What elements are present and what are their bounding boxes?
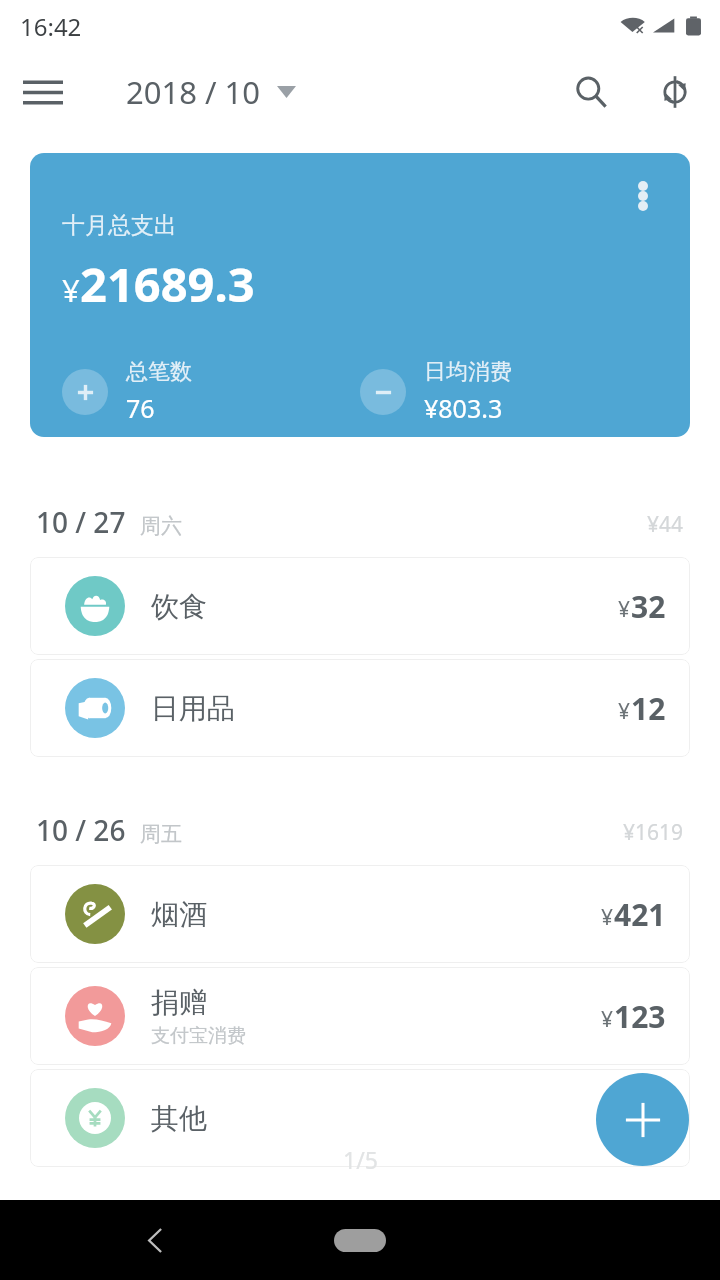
button[interactable]: 捐赠 bbox=[30, 967, 690, 1065]
button[interactable]: 2018 / 10 bbox=[126, 71, 296, 113]
staticText: 76 bbox=[126, 391, 155, 425]
staticText: ¥ bbox=[618, 595, 631, 624]
staticText: ¥1619 bbox=[623, 818, 684, 847]
button[interactable]: More options bbox=[30, 153, 690, 437]
staticText: ¥ bbox=[62, 269, 80, 311]
staticText: 123 bbox=[614, 996, 666, 1037]
staticText: 支付宝消费 bbox=[151, 1024, 246, 1048]
staticText: 2018 / 10 bbox=[126, 71, 261, 113]
button[interactable]: Back bbox=[128, 1212, 184, 1268]
button[interactable]: Home bbox=[334, 1229, 386, 1252]
staticText: 1/5 bbox=[343, 1144, 378, 1175]
staticText: ¥ bbox=[601, 903, 614, 932]
staticText: 十月总支出 bbox=[62, 211, 177, 240]
staticText: ¥ bbox=[601, 1005, 614, 1034]
staticText: 421 bbox=[614, 894, 666, 935]
button[interactable]: 其他 bbox=[30, 1069, 690, 1167]
staticText: 总笔数 bbox=[126, 358, 192, 386]
staticText: 12 bbox=[631, 688, 666, 729]
staticText: ¥ bbox=[618, 697, 631, 726]
button[interactable]: Menu bbox=[14, 63, 72, 121]
staticText: ¥44 bbox=[647, 510, 684, 539]
staticText: 其他 bbox=[151, 1101, 207, 1136]
button[interactable]: 日用品 bbox=[30, 659, 690, 757]
staticText: ¥803.3 bbox=[424, 391, 503, 425]
button[interactable]: 饮食 bbox=[30, 557, 690, 655]
button[interactable]: More options bbox=[618, 171, 668, 221]
button[interactable]: Refresh bbox=[644, 61, 706, 123]
staticText: 21689.3 bbox=[80, 252, 255, 316]
staticText: 饮食 bbox=[151, 589, 207, 624]
staticText: 捐赠 bbox=[151, 985, 207, 1020]
button[interactable]: Add record bbox=[596, 1073, 689, 1166]
staticText: 16:42 bbox=[20, 10, 82, 43]
staticText: 烟酒 bbox=[151, 897, 207, 932]
button[interactable]: Search bbox=[560, 61, 622, 123]
staticText: 日用品 bbox=[151, 691, 235, 726]
staticText: 周五 bbox=[140, 821, 182, 847]
staticText: 日均消费 bbox=[424, 358, 512, 386]
staticText: 10 / 26 bbox=[36, 811, 126, 849]
staticText: 10 / 27 bbox=[36, 503, 126, 541]
staticText: 32 bbox=[631, 586, 666, 627]
button[interactable]: 烟酒 bbox=[30, 865, 690, 963]
staticText: 周六 bbox=[140, 513, 182, 539]
